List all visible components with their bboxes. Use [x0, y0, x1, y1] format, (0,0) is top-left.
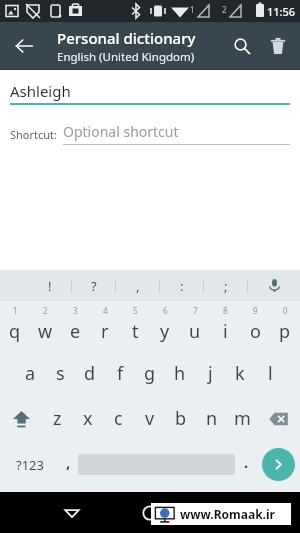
staticText: t — [132, 319, 139, 344]
button[interactable]: ! — [28, 270, 72, 301]
button[interactable]: Home — [130, 493, 170, 533]
staticText: j — [208, 361, 213, 386]
button[interactable]: f — [105, 351, 135, 396]
staticText: 1 — [13, 305, 18, 316]
staticText: g — [144, 361, 156, 386]
staticText: s — [56, 361, 65, 386]
staticText: u — [189, 319, 201, 344]
button[interactable]: Voice input — [248, 270, 300, 301]
button[interactable]: ; — [204, 270, 248, 301]
staticText: ?123 — [16, 456, 44, 474]
button[interactable]: ?123 — [0, 441, 60, 488]
staticText: 6 — [163, 305, 168, 316]
staticText: m — [234, 406, 251, 431]
staticText: r — [101, 319, 109, 344]
button[interactable]: 7 — [180, 301, 210, 351]
staticText: o — [250, 319, 261, 344]
staticText: 8 — [223, 305, 228, 316]
staticText: p — [279, 319, 291, 344]
button[interactable]: Search — [220, 24, 264, 68]
staticText: , — [136, 277, 140, 295]
staticText: w — [38, 319, 53, 344]
staticText: 11:56 — [267, 4, 296, 19]
staticText: 1 — [190, 4, 195, 15]
staticText: z — [53, 406, 62, 431]
staticText: x — [83, 406, 93, 431]
button[interactable]: Delete — [256, 24, 300, 68]
staticText: i — [223, 319, 228, 344]
staticText: Personal dictionary — [57, 28, 196, 48]
staticText: a — [25, 361, 36, 386]
staticText: . — [244, 452, 249, 472]
staticText: y — [160, 319, 170, 344]
staticText: : — [180, 277, 184, 295]
button[interactable]: j — [195, 351, 225, 396]
staticText: ! — [48, 277, 52, 295]
button[interactable]: a — [15, 351, 45, 396]
staticText: k — [235, 361, 245, 386]
staticText: 2 — [222, 4, 227, 15]
staticText: q — [9, 319, 21, 344]
staticText: 7 — [193, 305, 198, 316]
button[interactable]: c — [103, 396, 134, 441]
button[interactable]: 9 — [240, 301, 270, 351]
staticText: , — [66, 452, 71, 472]
staticText: Shortcut: — [10, 127, 58, 142]
staticText: 3 — [73, 305, 78, 316]
button[interactable]: Navigate up — [0, 22, 48, 70]
staticText: 4 — [103, 305, 108, 316]
button[interactable]: . — [236, 441, 256, 488]
button[interactable]: , — [60, 441, 77, 488]
button[interactable]: d — [75, 351, 105, 396]
button[interactable]: , — [116, 270, 160, 301]
staticText: 5 — [133, 305, 138, 316]
button[interactable]: Shift — [0, 396, 42, 441]
staticText: n — [206, 406, 218, 431]
staticText: 9 — [253, 305, 258, 316]
button[interactable]: v — [134, 396, 165, 441]
button[interactable]: 0 — [270, 301, 300, 351]
button[interactable]: Back — [52, 493, 92, 533]
button[interactable]: g — [135, 351, 165, 396]
staticText: v — [145, 406, 155, 431]
button[interactable]: 2 — [30, 301, 60, 351]
button[interactable]: h — [165, 351, 195, 396]
button[interactable]: : — [160, 270, 204, 301]
button[interactable]: Backspace — [258, 396, 300, 441]
staticText: www.Romaak.ir — [180, 506, 275, 522]
staticText: l — [268, 361, 273, 386]
button[interactable]: Space — [77, 441, 236, 488]
button[interactable]: s — [45, 351, 75, 396]
button[interactable]: x — [72, 396, 103, 441]
staticText: English (United Kingdom) — [57, 49, 195, 65]
button[interactable]: ? — [72, 270, 116, 301]
button[interactable]: m — [227, 396, 258, 441]
button[interactable]: 3 — [60, 301, 90, 351]
staticText: h — [174, 361, 186, 386]
button[interactable]: z — [42, 396, 72, 441]
staticText: e — [70, 319, 81, 344]
button[interactable]: 5 — [120, 301, 150, 351]
staticText: ? — [91, 277, 97, 295]
staticText: f — [117, 361, 124, 386]
button[interactable]: 4 — [90, 301, 120, 351]
staticText: c — [114, 406, 123, 431]
button[interactable]: 1 — [0, 301, 30, 351]
staticText: d — [84, 361, 96, 386]
staticText: 0 — [283, 305, 288, 316]
button[interactable]: l — [255, 351, 285, 396]
staticText: Optional shortcut — [63, 122, 179, 141]
staticText: 2 — [43, 305, 48, 316]
button[interactable]: Enter — [256, 441, 300, 488]
button[interactable]: 8 — [210, 301, 240, 351]
button[interactable]: b — [165, 396, 196, 441]
staticText: ; — [224, 277, 228, 295]
button[interactable]: n — [196, 396, 227, 441]
button[interactable]: 6 — [150, 301, 180, 351]
button[interactable]: k — [225, 351, 255, 396]
staticText: b — [175, 406, 187, 431]
staticText: Ashleigh — [10, 81, 71, 101]
